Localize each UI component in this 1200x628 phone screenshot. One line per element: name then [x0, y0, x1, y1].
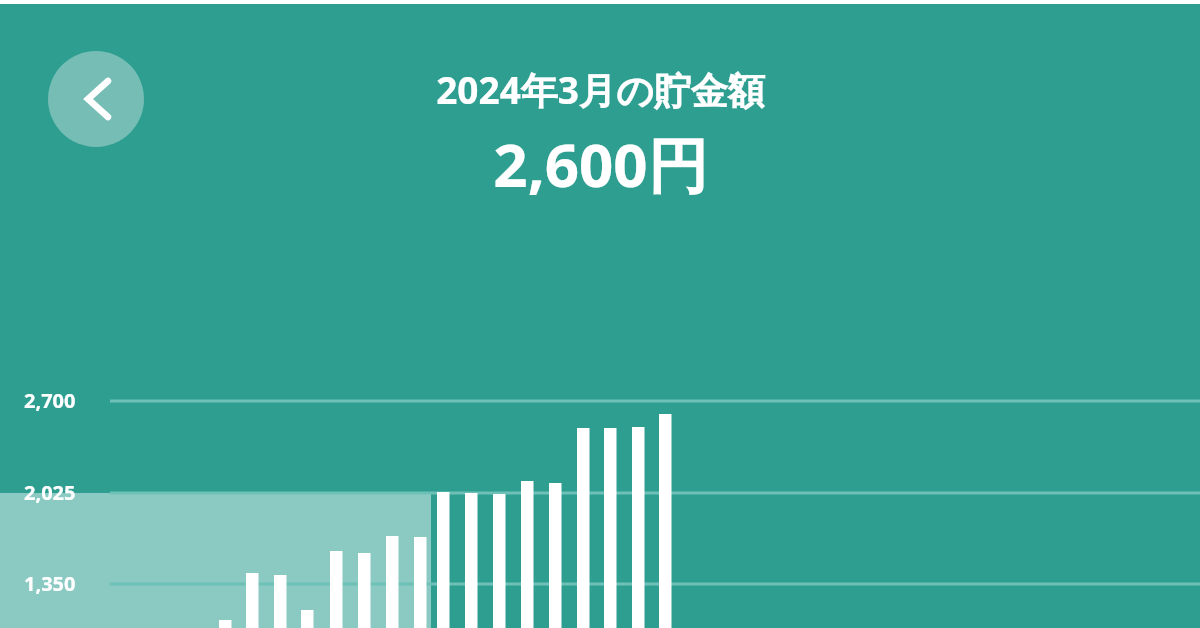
- staticText: 2024年3月の貯金額: [436, 64, 765, 115]
- button[interactable]: Back: [48, 51, 144, 147]
- staticText: 2,600円: [493, 123, 708, 205]
- staticText: 2,700: [24, 387, 76, 414]
- staticText: 1,350: [24, 570, 76, 597]
- staticText: 2,025: [24, 479, 76, 506]
